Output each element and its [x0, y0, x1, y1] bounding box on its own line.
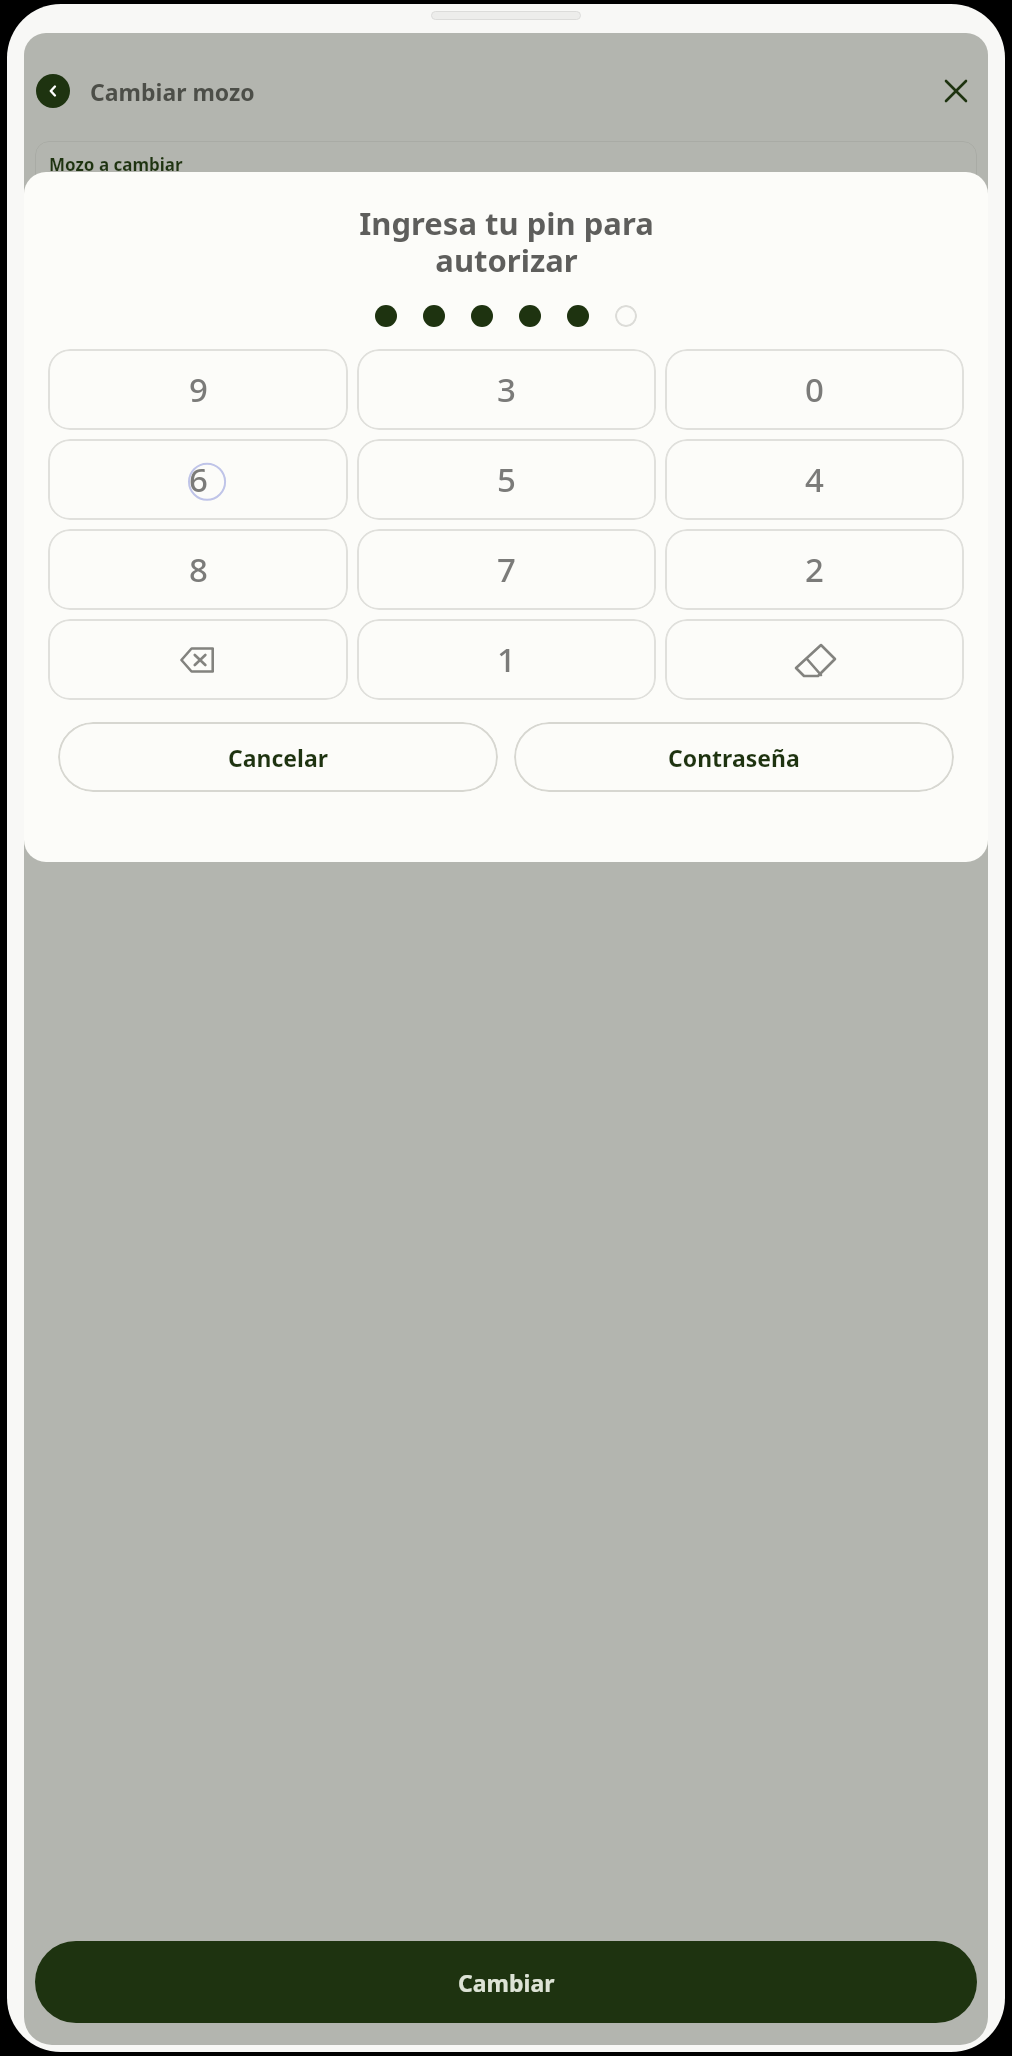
button[interactable]: Contraseña: [514, 722, 954, 792]
staticText: Ingresa tu pin para autorizar: [359, 202, 654, 281]
staticText: 1: [497, 637, 516, 682]
staticText: 5: [497, 457, 516, 502]
staticText: 9: [189, 367, 208, 412]
button[interactable]: Cancelar: [58, 722, 498, 792]
staticText: Contraseña: [668, 742, 800, 773]
button[interactable]: Cambiar: [35, 1941, 977, 2023]
button[interactable]: Borrar: [48, 619, 348, 700]
button[interactable]: 0: [665, 349, 964, 430]
staticText: 6: [189, 457, 208, 502]
staticText: 0: [805, 367, 824, 412]
button[interactable]: Close: [936, 71, 976, 111]
staticText: 8: [189, 547, 208, 592]
staticText: 3: [497, 367, 516, 412]
button[interactable]: 9: [48, 349, 348, 430]
button[interactable]: 5: [357, 439, 656, 520]
button[interactable]: Limpiar: [665, 619, 964, 700]
staticText: 2: [805, 547, 824, 592]
button[interactable]: Back: [36, 74, 70, 108]
staticText: Cambiar: [458, 1967, 555, 1998]
staticText: Cambiar mozo: [90, 76, 255, 107]
button[interactable]: 7: [357, 529, 656, 610]
button[interactable]: 4: [665, 439, 964, 520]
button[interactable]: 3: [357, 349, 656, 430]
button[interactable]: 1: [357, 619, 656, 700]
button[interactable]: 8: [48, 529, 348, 610]
staticText: 4: [805, 457, 824, 502]
staticText: 7: [497, 547, 516, 592]
staticText: Mozo a cambiar: [49, 153, 183, 176]
button[interactable]: 2: [665, 529, 964, 610]
staticText: Cancelar: [228, 742, 329, 773]
button[interactable]: 6: [48, 439, 348, 520]
